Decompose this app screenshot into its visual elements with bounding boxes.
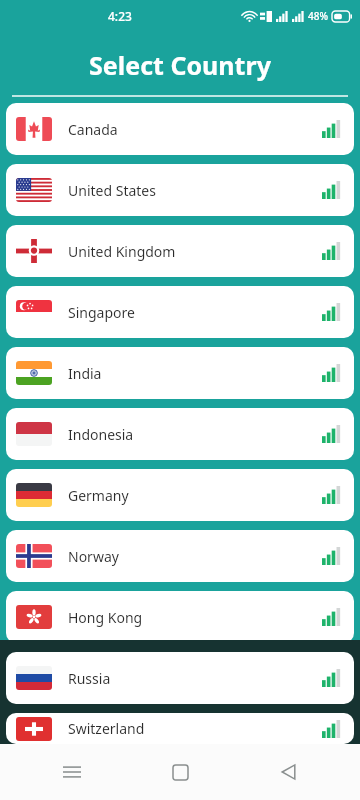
staticText: Norway (68, 547, 119, 566)
button[interactable]: Recent apps (36, 744, 108, 800)
staticText: United Kingdom (68, 242, 176, 261)
staticText: Indonesia (68, 425, 134, 444)
button[interactable]: United Kingdom (6, 225, 354, 277)
button[interactable]: Hong Kong (6, 591, 354, 643)
staticText: Switzerland (68, 719, 145, 738)
staticText: Russia (68, 669, 111, 688)
staticText: Germany (68, 486, 129, 505)
button[interactable]: Back (252, 744, 324, 800)
staticText: India (68, 364, 102, 383)
button[interactable]: United States (6, 164, 354, 216)
staticText: Singapore (68, 303, 135, 322)
button[interactable]: Russia (6, 652, 354, 704)
button[interactable]: Norway (6, 530, 354, 582)
staticText: Hong Kong (68, 608, 143, 627)
button[interactable]: India (6, 347, 354, 399)
button[interactable]: Switzerland (6, 713, 354, 744)
staticText: United States (68, 181, 156, 200)
staticText: 4:23 (108, 8, 132, 24)
button[interactable]: Switzerland (6, 713, 354, 744)
staticText: Switzerland (68, 719, 145, 738)
button[interactable]: Indonesia (6, 408, 354, 460)
button[interactable]: Canada (6, 103, 354, 155)
staticText: Russia (68, 669, 111, 688)
button[interactable]: Singapore (6, 286, 354, 338)
button[interactable]: Germany (6, 469, 354, 521)
staticText: Canada (68, 120, 118, 139)
button[interactable]: Russia (6, 652, 354, 704)
staticText: Select Country (0, 48, 360, 82)
staticText: 48% (308, 9, 328, 23)
button[interactable]: Home (144, 744, 216, 800)
